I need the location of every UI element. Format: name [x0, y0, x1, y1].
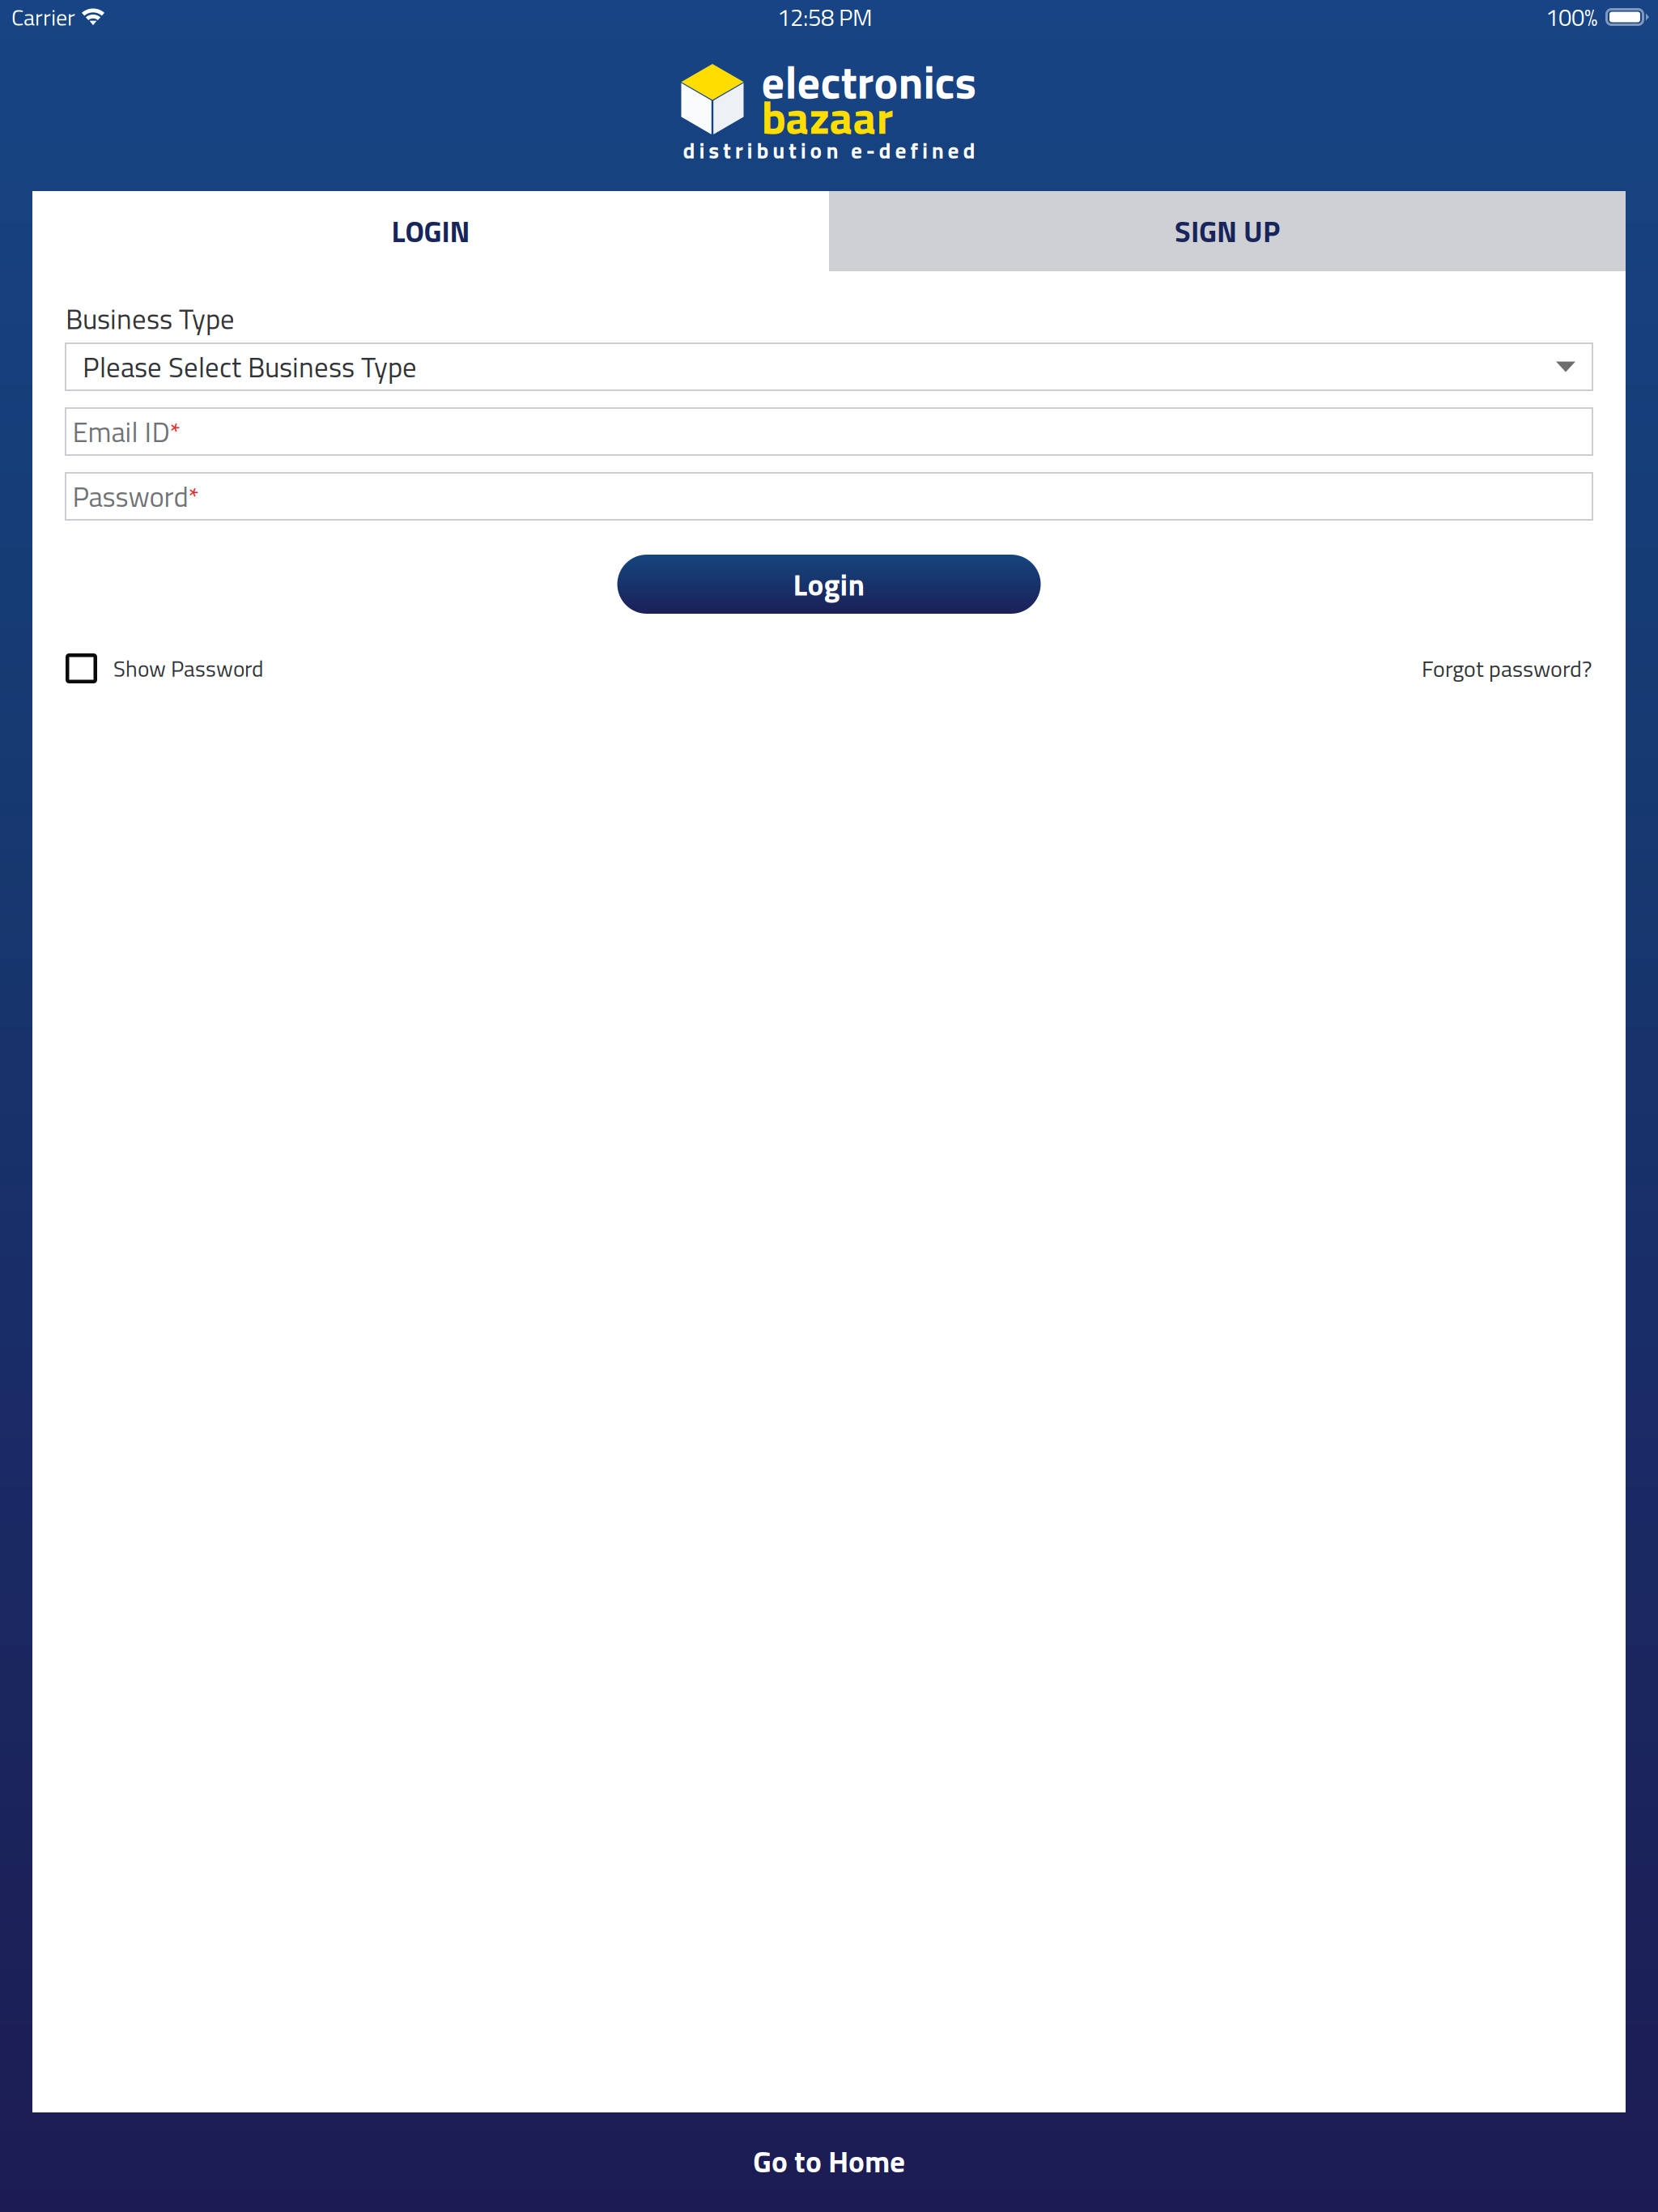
button[interactable]: SIGN UP	[829, 191, 1626, 271]
button[interactable]: Show Password	[66, 652, 263, 685]
staticText: *	[188, 477, 199, 516]
button[interactable]: Login	[617, 555, 1041, 614]
button[interactable]: Go to Home	[0, 2112, 1658, 2212]
button[interactable]: LOGIN	[32, 191, 829, 271]
staticText: distribution e-defined	[683, 133, 975, 167]
staticText: Show Password	[113, 652, 263, 685]
staticText: Go to Home	[753, 2138, 905, 2184]
staticText: 12:58 PM	[777, 0, 873, 35]
staticText: Carrier	[11, 0, 75, 34]
staticText: Login	[793, 561, 865, 607]
staticText: Forgot password?	[1422, 651, 1592, 686]
staticText: SIGN UP	[1175, 209, 1280, 253]
staticText: Business Type	[66, 297, 235, 340]
button[interactable]: Please Select Business Type	[66, 343, 1592, 390]
staticText: Please Select Business Type	[83, 345, 417, 388]
staticText: 100%	[1545, 0, 1597, 35]
staticText: bazaar	[761, 83, 893, 151]
staticText: Email ID	[72, 410, 170, 453]
staticText: Password	[72, 475, 188, 518]
staticText: electronics	[761, 47, 976, 116]
staticText: *	[170, 412, 180, 451]
button[interactable]: Forgot password?	[1422, 651, 1592, 686]
staticText: LOGIN	[391, 209, 470, 253]
